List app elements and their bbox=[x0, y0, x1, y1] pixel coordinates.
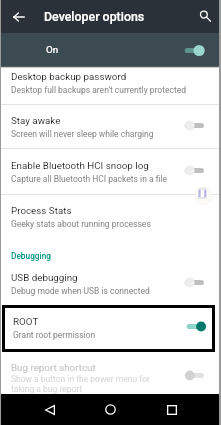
button[interactable]: Home bbox=[99, 398, 122, 421]
staticText: Desktop backup password bbox=[11, 71, 191, 82]
button[interactable]: Search bbox=[194, 5, 218, 29]
button[interactable]: Enable Bluetooth HCI snoop log bbox=[0, 151, 221, 185]
staticText: USB debugging bbox=[11, 272, 191, 283]
button[interactable]: Navigate up bbox=[6, 4, 31, 29]
button[interactable]: On bbox=[0, 33, 221, 66]
button[interactable]: Back bbox=[38, 398, 61, 421]
button[interactable]: Process Stats bbox=[0, 196, 221, 230]
staticText: Desktop full backups aren't currently pr… bbox=[11, 85, 191, 95]
staticText: On bbox=[46, 44, 59, 55]
button[interactable]: Desktop backup password bbox=[0, 62, 221, 96]
staticText: Debug mode when USB is connected bbox=[11, 286, 191, 296]
button[interactable]: Bug report shortcut bbox=[0, 360, 221, 394]
staticText: Process Stats bbox=[11, 205, 191, 216]
button[interactable]: Stay awake bbox=[0, 106, 221, 140]
staticText: Screen will never sleep while charging bbox=[11, 129, 191, 139]
staticText: ROOT bbox=[13, 316, 39, 327]
staticText: Stay awake bbox=[11, 115, 191, 126]
button[interactable]: ROOT bbox=[2, 305, 215, 352]
staticText: Developer options bbox=[44, 9, 145, 24]
staticText: Show a button in the power menu for taki… bbox=[11, 374, 157, 394]
staticText: Bug report shortcut bbox=[11, 362, 96, 373]
button[interactable]: Recent apps bbox=[160, 398, 183, 421]
staticText: Grant root permission bbox=[13, 330, 96, 340]
button[interactable]: USB debugging bbox=[0, 263, 221, 297]
staticText: Geeky stats about running processes bbox=[11, 219, 191, 229]
staticText: Debugging bbox=[11, 251, 51, 261]
staticText: Enable Bluetooth HCI snoop log bbox=[11, 160, 191, 171]
staticText: Capture all Bluetooth HCI packets in a f… bbox=[11, 174, 191, 184]
